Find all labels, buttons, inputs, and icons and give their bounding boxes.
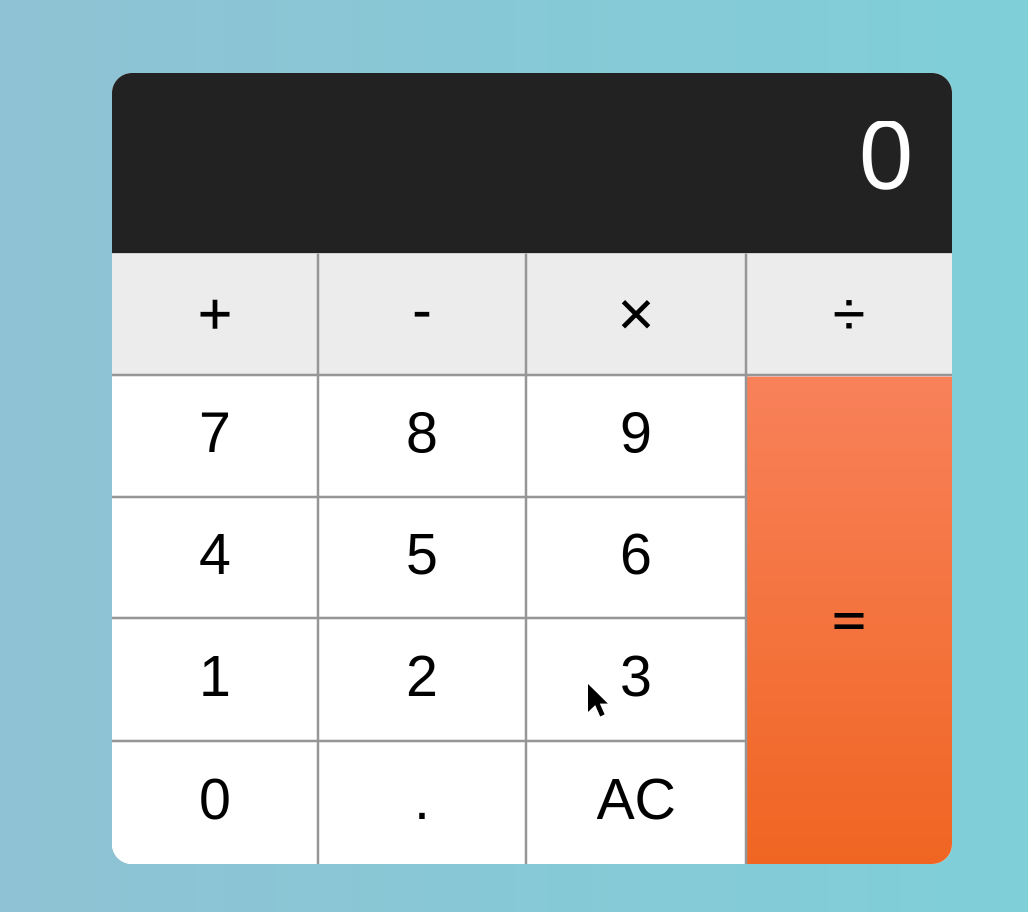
button[interactable]: 2 [318,618,526,741]
staticText: 7 [199,400,231,465]
staticText: 8 [406,400,438,465]
button[interactable]: 4 [112,497,318,618]
button[interactable]: Divide [746,253,952,375]
staticText: 0 [859,101,913,209]
staticText: 5 [406,522,438,586]
button[interactable]: Multiply [526,253,746,375]
staticText: 9 [620,400,652,465]
staticText: AC [596,767,675,831]
staticText: 4 [199,522,231,586]
button[interactable]: Equals [746,376,952,865]
staticText: 6 [620,522,652,586]
button[interactable]: 5 [318,497,526,618]
button[interactable]: 1 [112,618,318,741]
staticText: . [414,767,430,831]
staticText: 1 [199,644,231,708]
button[interactable]: AC [526,741,746,864]
button[interactable]: 0 [112,741,318,864]
staticText: 0 [199,767,231,831]
button[interactable]: 9 [526,375,746,497]
button[interactable]: 3 [526,618,746,741]
button[interactable]: 8 [318,375,526,497]
button[interactable]: Add [112,253,318,375]
button[interactable]: 7 [112,375,318,497]
button[interactable]: 6 [526,497,746,618]
button[interactable]: . [318,741,526,864]
button[interactable]: Subtract [318,253,526,375]
staticText: 3 [620,644,652,708]
staticText: 2 [406,644,438,708]
